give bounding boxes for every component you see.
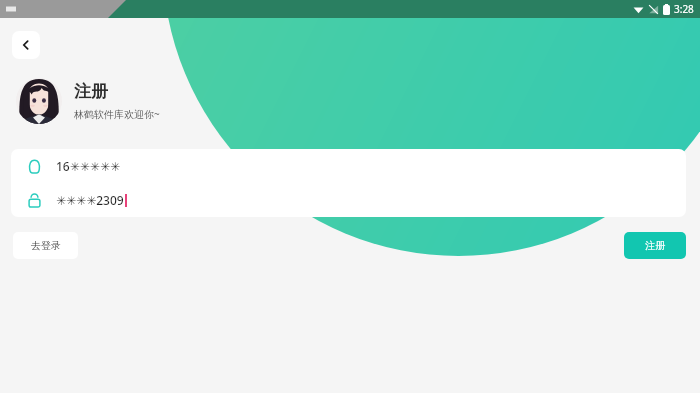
button[interactable]: 注册 (624, 232, 686, 259)
staticText: 注册 (645, 239, 665, 252)
button[interactable]: Back (12, 31, 40, 59)
button[interactable]: ✳✳✳✳2309 (11, 183, 686, 217)
staticText: 注册 (74, 81, 108, 102)
staticText: 林鹤软件库欢迎你~ (74, 107, 160, 121)
staticText: 3:28 (674, 2, 694, 16)
button[interactable]: 16✳✳✳✳✳ (11, 149, 686, 183)
staticText: ✳✳✳✳2309 (56, 192, 124, 208)
staticText: 去登录 (31, 239, 61, 252)
button[interactable]: 去登录 (13, 232, 78, 259)
staticText: 16✳✳✳✳✳ (56, 158, 121, 174)
